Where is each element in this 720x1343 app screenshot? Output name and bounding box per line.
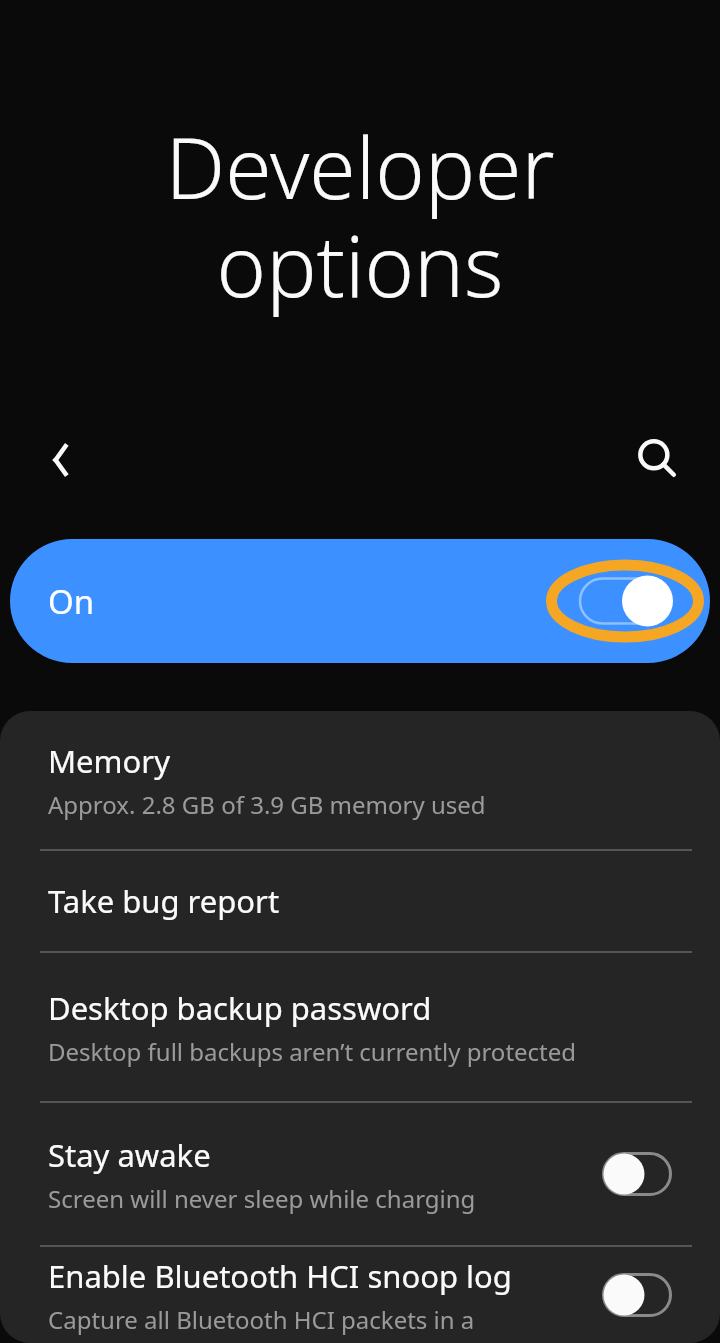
staticText: Screen will never sleep while charging xyxy=(48,1182,476,1215)
staticText: Enable Bluetooth HCI snoop log xyxy=(48,1255,512,1297)
button[interactable]: Enable Bluetooth HCI snoop log xyxy=(0,1247,720,1343)
staticText: Approx. 2.8 GB of 3.9 GB memory used xyxy=(48,788,486,821)
button[interactable]: Toggle xyxy=(602,1273,672,1317)
button[interactable]: Back xyxy=(22,422,98,498)
staticText: On xyxy=(48,579,95,624)
staticText: Capture all Bluetooth HCI packets in a xyxy=(48,1303,475,1336)
staticText: Desktop full backups aren’t currently pr… xyxy=(48,1035,577,1068)
button[interactable]: Search xyxy=(620,422,696,498)
staticText: Desktop backup password xyxy=(48,987,432,1029)
button[interactable]: Desktop backup password xyxy=(0,953,720,1101)
button[interactable]: On xyxy=(10,539,710,663)
staticText: Developer options xyxy=(150,109,570,322)
button[interactable]: Stay awake xyxy=(0,1103,720,1245)
button[interactable]: Toggle xyxy=(602,1152,672,1196)
staticText: Take bug report xyxy=(48,880,280,922)
staticText: Stay awake xyxy=(48,1134,211,1176)
button[interactable]: Developer options on xyxy=(550,556,700,646)
button[interactable]: Take bug report xyxy=(0,851,720,951)
staticText: Memory xyxy=(48,740,170,782)
button[interactable]: Memory xyxy=(0,711,720,849)
